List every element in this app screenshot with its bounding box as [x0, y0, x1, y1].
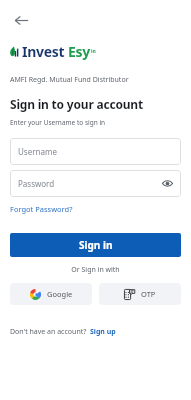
button[interactable]: OTP — [99, 283, 181, 305]
staticText: Enter your Username to sign in — [10, 118, 106, 127]
staticText: Forgot Password? — [10, 204, 73, 214]
staticText: in — [91, 48, 96, 55]
staticText: Google — [47, 289, 73, 299]
staticText: Don't have an account? — [10, 327, 87, 337]
staticText: Esy — [68, 42, 90, 61]
button[interactable]: Password — [10, 170, 181, 197]
staticText: Password — [18, 178, 55, 189]
button[interactable]: Forgot Password? — [10, 204, 73, 214]
staticText: Sign up — [90, 327, 116, 337]
button[interactable]: Username — [10, 138, 181, 165]
staticText: Invest — [22, 42, 65, 61]
button[interactable]: Back — [6, 5, 36, 35]
staticText: Username — [18, 146, 57, 157]
button[interactable]: Show password — [161, 177, 174, 190]
button[interactable]: Google — [10, 283, 92, 305]
button[interactable]: Sign up — [90, 327, 116, 337]
staticText: Or Sign in with — [0, 265, 191, 275]
staticText: Sign in to your account — [10, 96, 143, 112]
staticText: Sign in — [79, 238, 113, 252]
staticText: AMFI Regd. Mutual Fund Distributor — [10, 75, 129, 85]
staticText: OTP — [141, 289, 156, 299]
button[interactable]: Sign in — [10, 233, 181, 257]
